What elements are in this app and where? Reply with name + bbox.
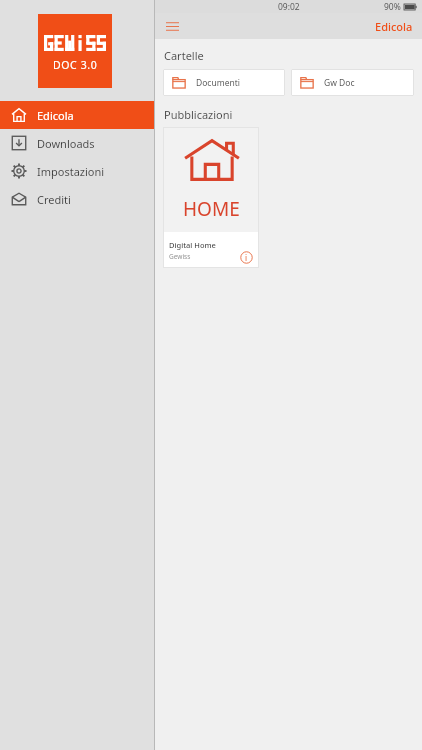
button[interactable]: HOME bbox=[163, 127, 259, 268]
staticText: Downloads bbox=[37, 136, 95, 151]
staticText: Crediti bbox=[37, 192, 71, 207]
staticText: Pubblicazioni bbox=[164, 107, 233, 122]
staticText: Cartelle bbox=[164, 48, 204, 63]
staticText: DOC 3.0 bbox=[53, 58, 98, 72]
button[interactable]: Edicola bbox=[375, 19, 413, 34]
staticText: Edicola bbox=[37, 108, 74, 123]
staticText: 09:02 bbox=[278, 1, 300, 13]
button[interactable]: Crediti bbox=[0, 185, 155, 213]
button[interactable]: Edicola bbox=[0, 101, 155, 129]
button[interactable]: Info bbox=[239, 250, 253, 264]
button[interactable]: Impostazioni bbox=[0, 157, 155, 185]
button[interactable]: Downloads bbox=[0, 129, 155, 157]
staticText: Gewiss bbox=[169, 252, 191, 261]
button[interactable]: Documenti bbox=[163, 69, 285, 96]
staticText: Documenti bbox=[196, 77, 240, 89]
button[interactable]: Menu bbox=[162, 16, 182, 36]
staticText: Edicola bbox=[375, 19, 413, 34]
staticText: 90% bbox=[384, 1, 401, 13]
staticText: Impostazioni bbox=[37, 164, 105, 179]
staticText: Gw Doc bbox=[324, 77, 355, 89]
staticText: HOME bbox=[183, 196, 240, 222]
button[interactable]: Gw Doc bbox=[291, 69, 414, 96]
staticText: Digital Home bbox=[169, 240, 216, 250]
staticText: i bbox=[245, 252, 248, 263]
